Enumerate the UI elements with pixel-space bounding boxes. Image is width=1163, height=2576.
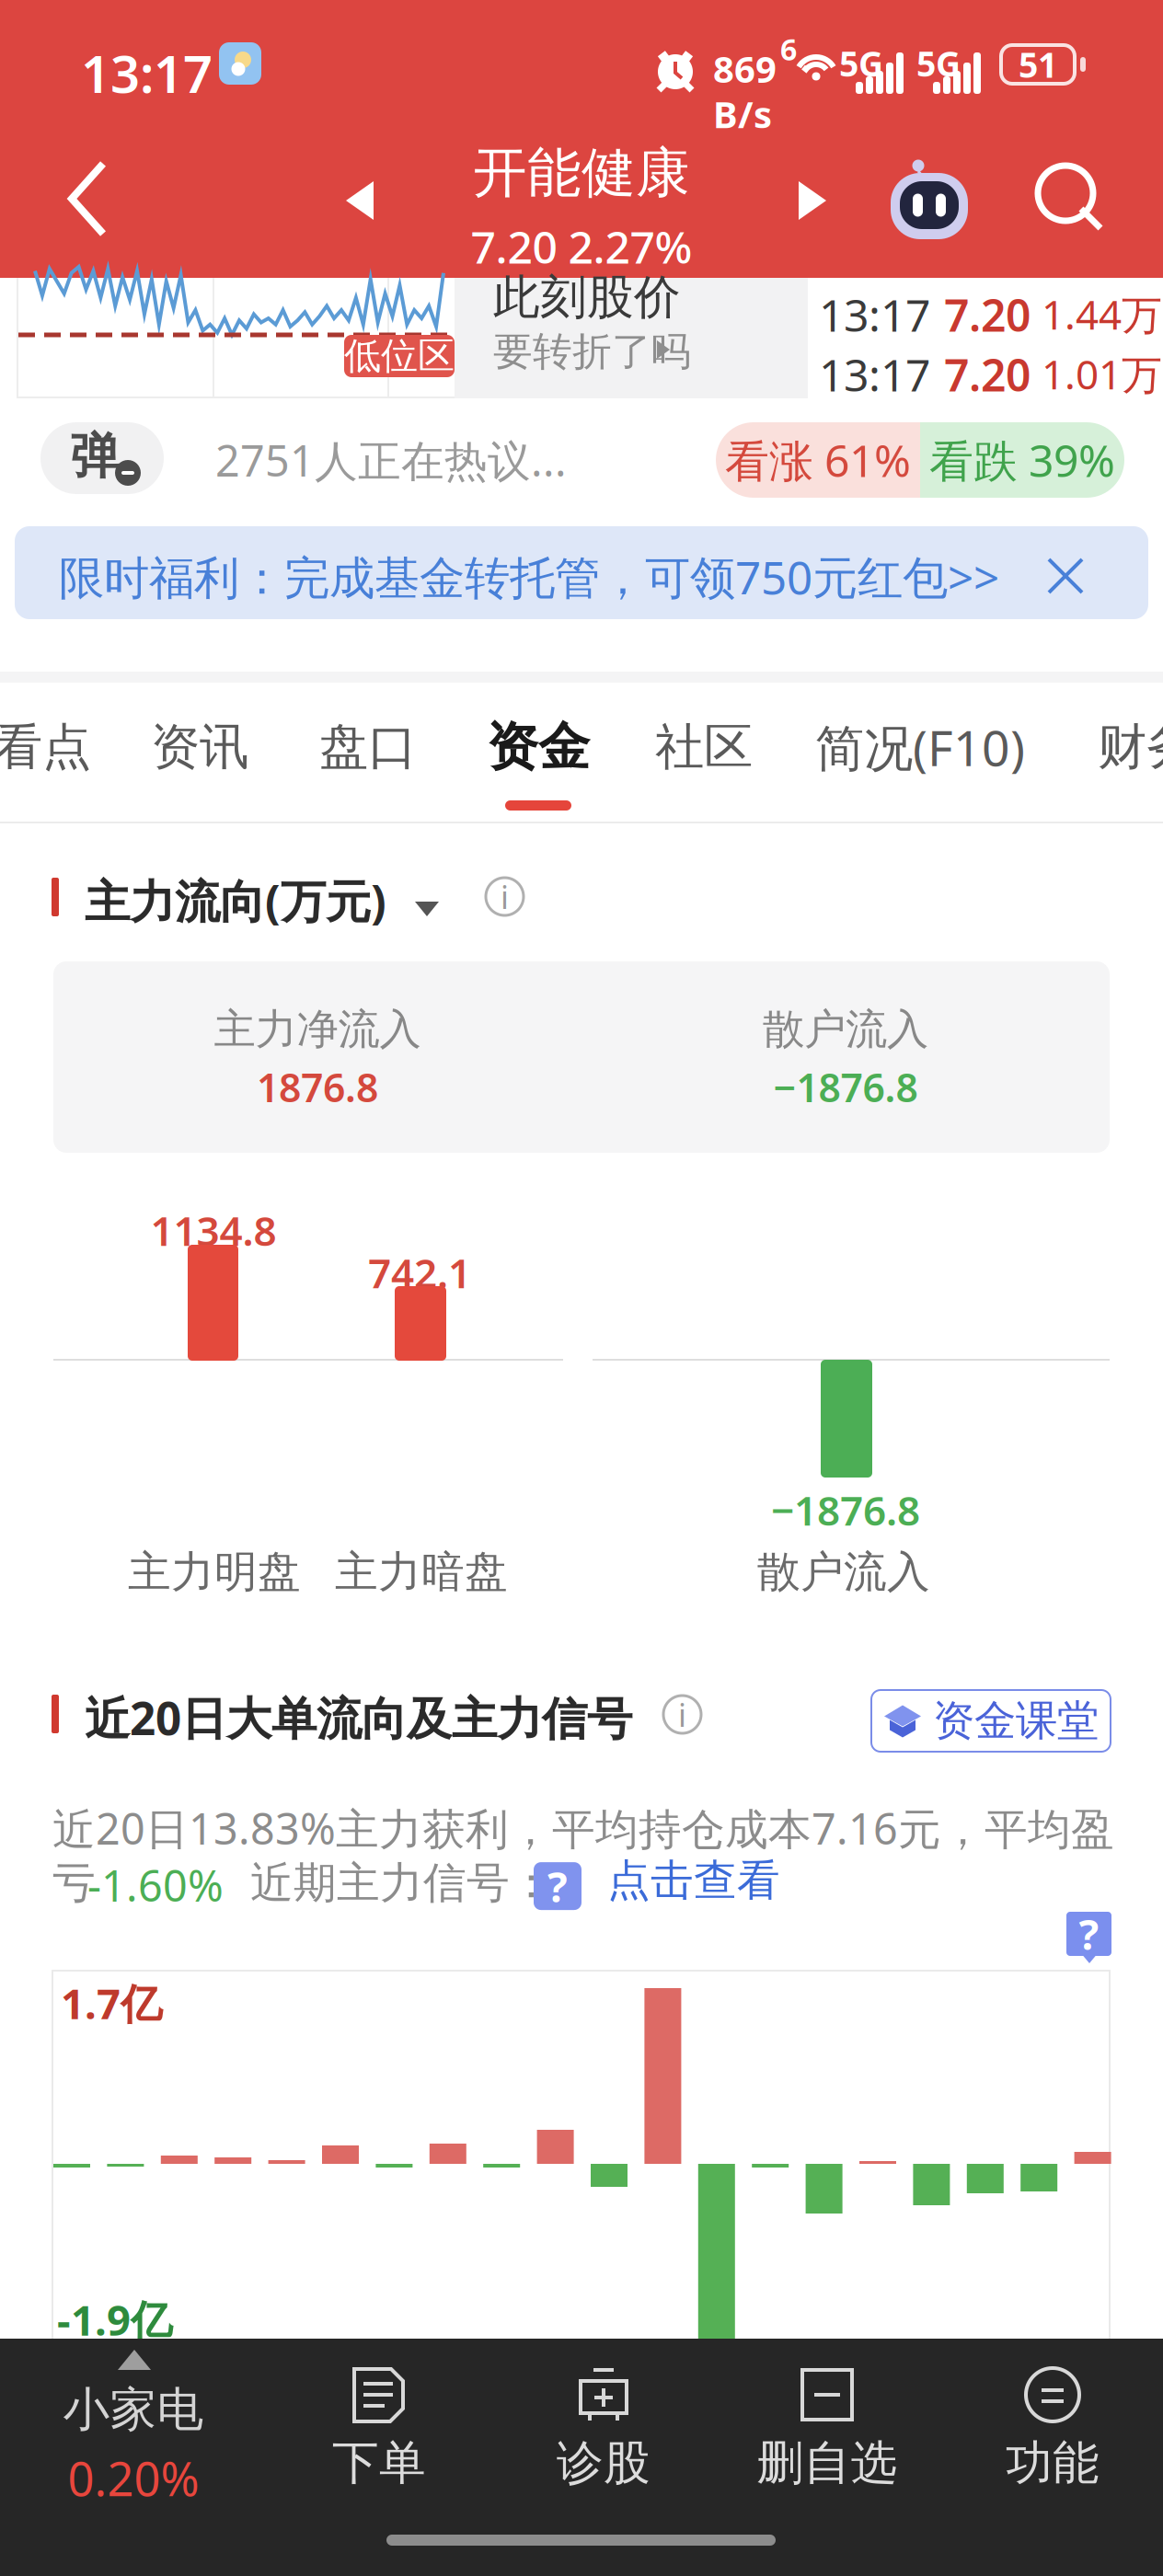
button[interactable]: 下单 [275, 2339, 483, 2504]
button[interactable]: AI assistant [885, 156, 973, 245]
staticText: 要转折了吗 [493, 328, 691, 376]
staticText: 小家电 [63, 2381, 204, 2438]
staticText: 资金 [487, 715, 590, 779]
staticText: 社区 [655, 717, 753, 777]
button[interactable]: 看点 [0, 703, 153, 791]
staticText: ? [547, 1858, 568, 1914]
button[interactable]: Help [1066, 1912, 1111, 1963]
staticText: 财务 [1098, 717, 1163, 777]
staticText: 13:17 [819, 285, 930, 344]
button[interactable]: 删自选 [705, 2339, 950, 2504]
staticText: −1876.8 [771, 1483, 920, 1537]
staticText: 看涨 61% [725, 431, 911, 489]
staticText: B/s [713, 89, 772, 138]
staticText: 主力暗盘 [335, 1546, 508, 1598]
staticText: 亏 [52, 1857, 96, 1909]
staticText: 0.20% [68, 2447, 199, 2509]
staticText: 看点 [0, 717, 91, 777]
staticText: -1.9亿 [57, 2292, 172, 2347]
button[interactable]: 弹 [0, 398, 1163, 524]
button[interactable]: 盘口 [258, 703, 478, 791]
button[interactable]: Back [57, 151, 149, 247]
button[interactable]: 简况(F10) [810, 703, 1031, 791]
staticText: 1876.8 [257, 1061, 378, 1113]
staticText: 散户流入 [763, 1004, 928, 1055]
staticText: 简况(F10) [815, 714, 1025, 780]
button[interactable]: 资金课堂 [871, 1690, 1111, 1752]
staticText: 13:17 [81, 39, 213, 107]
staticText: i [678, 1693, 686, 1736]
staticText: i [501, 875, 509, 918]
staticText: 限时福利：完成基金转托管，可领750元红包>> [59, 546, 999, 607]
button[interactable]: 社区 [593, 703, 814, 791]
staticText: 5G [839, 40, 883, 86]
staticText: 近20日大单流向及主力信号 [85, 1687, 632, 1748]
staticText: 看跌 39% [929, 431, 1115, 489]
button[interactable]: 限时福利：完成基金转托管，可领750元红包>> [15, 526, 1148, 619]
staticText: 功能 [1006, 2434, 1100, 2492]
staticText: −1876.8 [773, 1061, 918, 1113]
button[interactable]: 财务 [1036, 703, 1163, 791]
button[interactable]: 诊股 [500, 2339, 708, 2504]
staticText: 13:17 [819, 345, 930, 404]
button[interactable]: Info [663, 1696, 701, 1733]
button[interactable]: 点击查看 [607, 1853, 819, 1908]
staticText: 7.20 [944, 345, 1031, 404]
staticText: 开能健康 [473, 140, 690, 206]
button[interactable]: 资讯 [89, 703, 310, 791]
staticText: 51 [1019, 42, 1057, 87]
button[interactable]: Info [486, 878, 524, 915]
staticText: 此刻股价 [493, 269, 681, 326]
staticText: ? [1079, 1906, 1099, 1962]
staticText: 近期主力信号： [250, 1857, 553, 1909]
staticText: -1.60% [87, 1857, 224, 1914]
staticText: 诊股 [557, 2434, 651, 2492]
staticText: 主力流向(万元) [85, 870, 386, 931]
staticText: 5G [916, 40, 961, 86]
staticText: 7.20 [944, 285, 1031, 344]
button[interactable]: Next stock [777, 164, 848, 237]
staticText: 下单 [332, 2434, 426, 2492]
staticText: 主力净流入 [214, 1004, 421, 1055]
button[interactable]: Search [1027, 155, 1115, 243]
staticText: 869 [713, 44, 777, 93]
staticText: 点击查看 [607, 1854, 780, 1907]
staticText: 1.01万 [1042, 347, 1162, 401]
staticText: 1.7亿 [61, 1975, 162, 2031]
staticText: 资讯 [151, 717, 248, 777]
button[interactable]: Switch period [409, 891, 445, 927]
button[interactable]: Previous stock [324, 164, 396, 237]
button[interactable]: 资金 [428, 703, 649, 791]
staticText: 近20日13.83%主力获利，平均持仓成本7.16元，平均盈 [52, 1800, 1114, 1857]
staticText: 7.20 2.27% [471, 217, 692, 276]
staticText: 盘口 [319, 717, 417, 777]
staticText: 主力明盘 [128, 1546, 301, 1598]
staticText: 资金课堂 [933, 1695, 1099, 1747]
staticText: 散户流入 [757, 1546, 930, 1598]
staticText: 删自选 [757, 2434, 898, 2492]
staticText: 低位区 [344, 333, 455, 379]
staticText: 742.1 [368, 1246, 471, 1299]
staticText: 1.44万 [1042, 287, 1162, 341]
button[interactable]: 功能 [949, 2339, 1157, 2504]
staticText: 1134.8 [150, 1203, 276, 1257]
staticText: 6 [780, 29, 797, 69]
staticText: 2751人正在热议... [215, 431, 567, 489]
button[interactable]: 小家电 [18, 2339, 248, 2504]
staticText: 弹 [70, 426, 119, 486]
